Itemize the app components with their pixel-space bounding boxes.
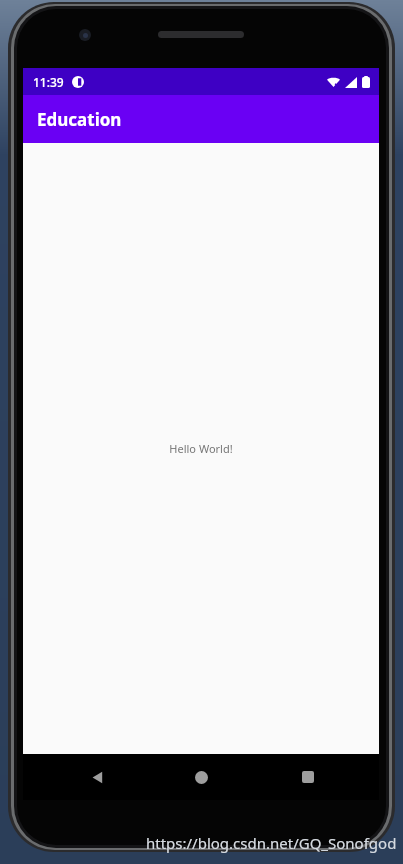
button[interactable]: Education [23,95,379,143]
button[interactable]: Back [79,759,115,795]
staticText: 11:39 [33,74,64,90]
staticText: Hello World! [169,441,233,456]
staticText: https://blog.csdn.net/GQ_Sonofgod [146,833,397,853]
button[interactable]: Recent apps [290,759,326,795]
button[interactable]: Home [183,759,219,795]
staticText: Education [37,108,122,131]
